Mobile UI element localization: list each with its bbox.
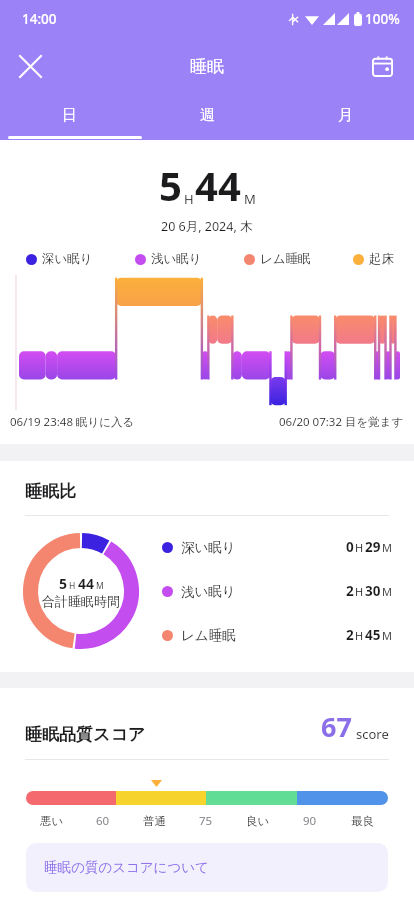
staticText: 67	[321, 708, 352, 745]
staticText: 5	[159, 158, 182, 212]
staticText: M	[382, 628, 392, 643]
staticText: レム睡眠	[260, 251, 311, 267]
staticText: 90	[303, 813, 317, 829]
staticText: 深い眠り	[181, 539, 236, 556]
button[interactable]: 日	[0, 94, 138, 136]
staticText: 睡眠	[190, 56, 224, 77]
staticText: H	[69, 580, 76, 592]
staticText: H	[355, 628, 364, 643]
button[interactable]: 睡眠の質のスコアについて	[26, 843, 388, 892]
staticText: 普通	[143, 814, 166, 828]
staticText: 良い	[246, 814, 270, 828]
staticText: H	[184, 190, 194, 208]
staticText: 60	[96, 813, 110, 829]
staticText: 睡眠品質スコア	[25, 724, 146, 745]
staticText: M	[96, 580, 104, 592]
staticText: 100%	[365, 10, 400, 28]
staticText: 44	[78, 574, 95, 593]
staticText: レム睡眠	[181, 627, 236, 644]
staticText: 睡眠比	[25, 481, 76, 502]
staticText: 深い眠り	[42, 251, 93, 267]
staticText: 44	[195, 158, 241, 212]
button[interactable]: 浅い眠り	[162, 582, 392, 600]
staticText: 06/20 07:32 目を覚ます	[279, 414, 404, 430]
button[interactable]: 週	[138, 94, 276, 136]
staticText: 2	[346, 582, 354, 600]
button[interactable]: 深い眠り	[162, 538, 392, 556]
staticText: 2	[346, 626, 354, 644]
staticText: 合計睡眠時間	[41, 593, 121, 609]
staticText: 20 6月, 2024, 木	[161, 218, 253, 235]
staticText: M	[382, 584, 392, 599]
staticText: H	[355, 540, 364, 555]
staticText: 0	[346, 538, 354, 556]
staticText: 月	[338, 106, 353, 125]
staticText: 06/19 23:48 眠りに入る	[10, 414, 135, 430]
staticText: 45	[365, 626, 381, 644]
staticText: 5	[59, 574, 68, 593]
staticText: 睡眠の質のスコアについて	[44, 859, 209, 876]
staticText: score	[356, 725, 389, 743]
button[interactable]: レム睡眠	[162, 626, 392, 644]
staticText: 浅い眠り	[151, 251, 202, 267]
staticText: 週	[200, 106, 215, 125]
staticText: 悪い	[40, 814, 64, 828]
staticText: 浅い眠り	[181, 583, 236, 600]
staticText: 最良	[351, 814, 374, 828]
staticText: 起床	[369, 251, 394, 267]
button[interactable]: 月	[276, 94, 414, 136]
button[interactable]: Close	[8, 44, 52, 88]
staticText: M	[382, 540, 392, 555]
staticText: 29	[365, 538, 381, 556]
staticText: H	[355, 584, 364, 599]
staticText: 75	[199, 813, 213, 829]
staticText: 日	[62, 106, 77, 125]
staticText: 30	[365, 582, 381, 600]
button[interactable]: Calendar	[360, 44, 404, 88]
staticText: 14:00	[22, 10, 57, 28]
staticText: M	[244, 190, 256, 208]
